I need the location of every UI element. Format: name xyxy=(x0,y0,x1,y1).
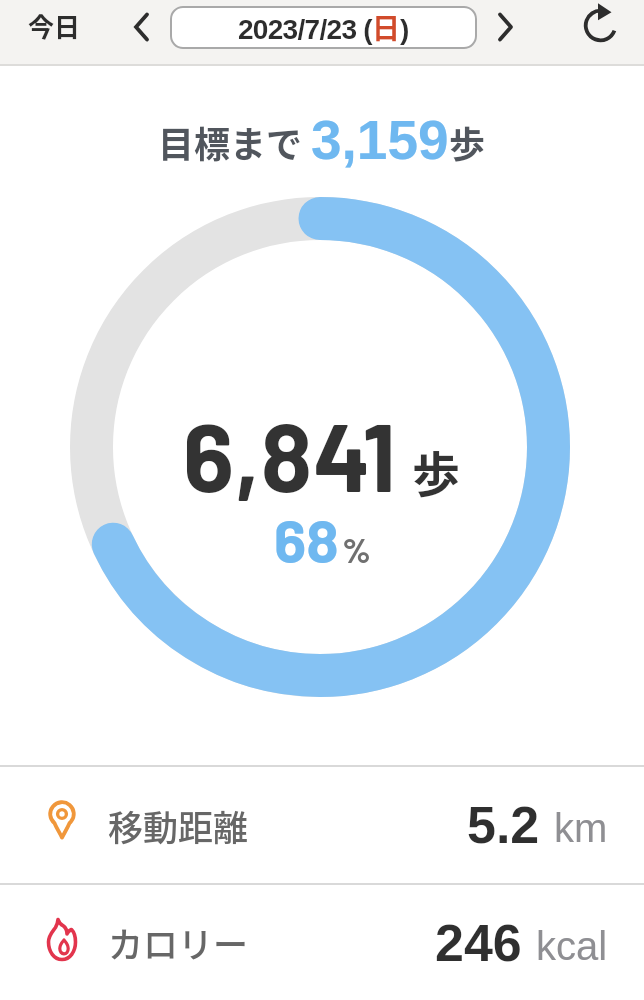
staticText: % xyxy=(342,528,371,570)
staticText: 6,841 xyxy=(183,397,397,511)
staticText: 歩 xyxy=(412,436,461,506)
staticText: 2023/7/23 (日) xyxy=(238,7,410,48)
staticText: 68 xyxy=(274,503,339,575)
staticText: km xyxy=(554,806,608,851)
staticText: 移動距離 xyxy=(108,800,249,851)
staticText: 歩 xyxy=(449,116,486,168)
staticText: 3,159 xyxy=(311,109,449,170)
staticText: 目標まで xyxy=(158,116,311,168)
staticText: kcal xyxy=(536,924,608,969)
staticText: 今日 xyxy=(28,7,81,45)
staticText: 246 xyxy=(435,914,522,972)
staticText: 5.2 xyxy=(467,796,540,854)
staticText: カロリー xyxy=(108,917,249,968)
